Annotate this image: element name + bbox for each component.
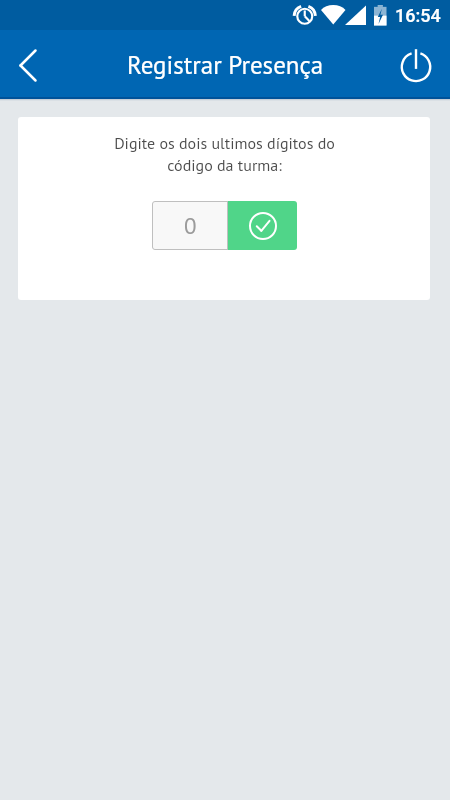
staticText: Registrar Presença <box>127 49 324 81</box>
staticText: 16:54 <box>395 5 441 26</box>
button[interactable]: Confirmar <box>228 201 297 250</box>
staticText: Digite os dois ultimos dígitos do código… <box>114 133 335 176</box>
staticText: 0 <box>184 211 197 241</box>
button[interactable]: Voltar <box>4 41 52 89</box>
button[interactable]: 0 <box>152 201 228 250</box>
button[interactable]: Sair <box>394 43 438 87</box>
